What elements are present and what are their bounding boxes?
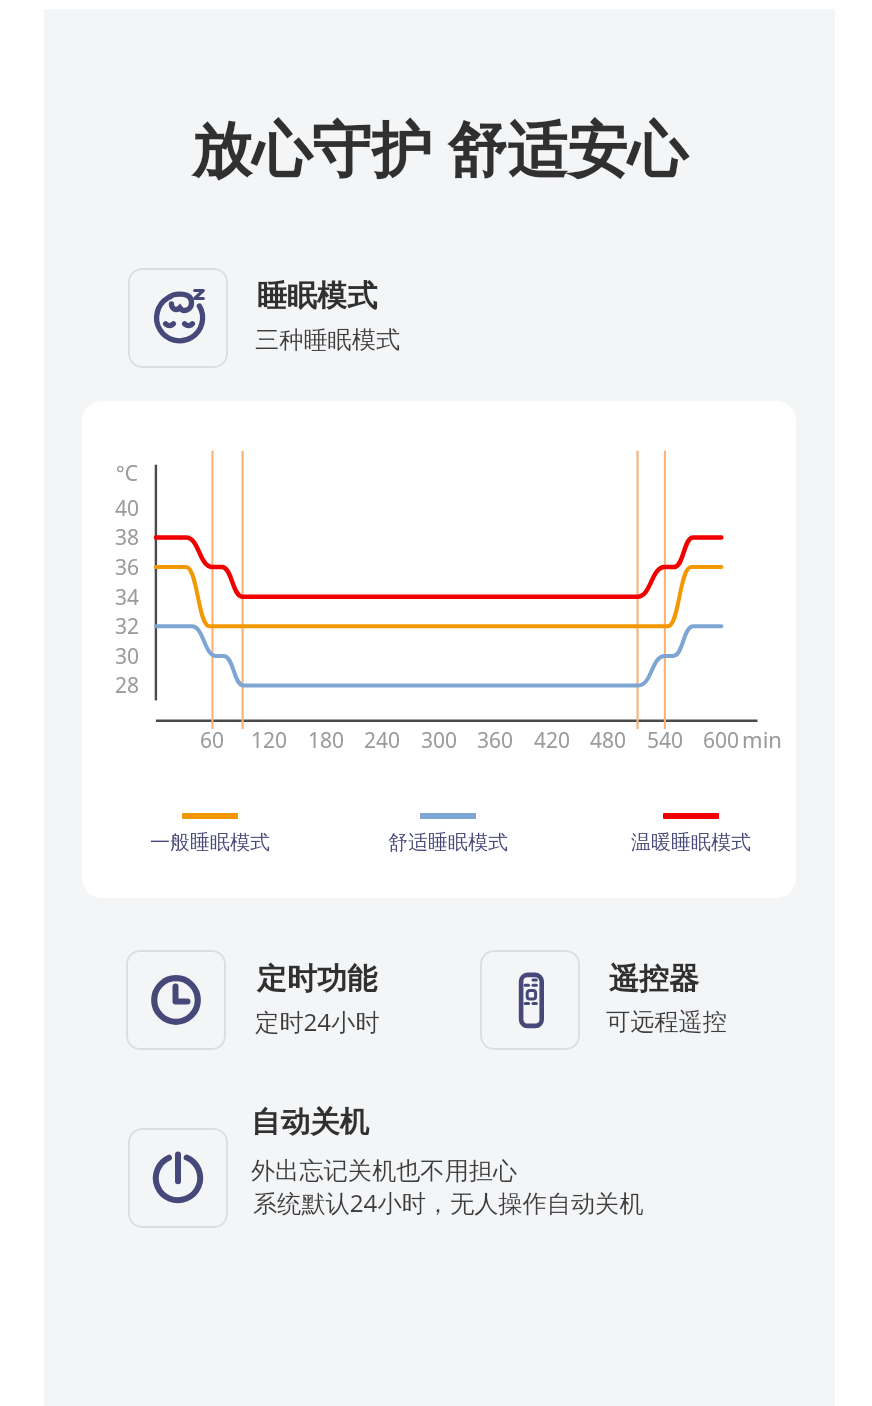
staticText: 定时功能 <box>257 960 377 998</box>
staticText: 60 <box>92 726 332 755</box>
staticText: 32 <box>7 612 247 641</box>
staticText: 300 <box>319 726 559 755</box>
staticText: 30 <box>7 642 247 671</box>
staticText: 三种睡眠模式 <box>255 325 401 355</box>
staticText: min <box>642 724 872 754</box>
staticText: 定时24小时 <box>255 1005 380 1038</box>
staticText: 36 <box>7 553 247 582</box>
button[interactable]: Timer <box>126 950 226 1050</box>
staticText: 系统默认24小时，无人操作自动关机 <box>253 1186 644 1219</box>
staticText: 放心守护 舒适安心 <box>44 107 835 189</box>
staticText: 420 <box>432 726 672 755</box>
staticText: 600 <box>601 726 841 755</box>
button[interactable]: Sleep mode <box>128 268 228 368</box>
staticText: 540 <box>545 726 785 755</box>
staticText: °C <box>7 459 247 488</box>
staticText: 480 <box>488 726 728 755</box>
staticText: 38 <box>7 523 247 552</box>
staticText: 240 <box>262 726 502 755</box>
staticText: 一般睡眠模式 <box>90 830 330 855</box>
staticText: 120 <box>149 726 389 755</box>
staticText: 180 <box>206 726 446 755</box>
staticText: 40 <box>7 494 247 523</box>
staticText: 28 <box>7 671 247 700</box>
staticText: 舒适睡眠模式 <box>328 830 568 855</box>
staticText: 外出忘记关机也不用担心 <box>251 1156 518 1186</box>
staticText: 34 <box>7 583 247 612</box>
staticText: 自动关机 <box>251 1104 369 1141</box>
button[interactable]: Remote control <box>480 950 580 1050</box>
staticText: 睡眠模式 <box>257 277 377 315</box>
staticText: 360 <box>375 726 615 755</box>
button[interactable]: Auto power off <box>128 1128 228 1228</box>
staticText: 温暖睡眠模式 <box>571 830 811 855</box>
staticText: 可远程遥控 <box>606 1007 727 1037</box>
staticText: 遥控器 <box>609 960 699 998</box>
